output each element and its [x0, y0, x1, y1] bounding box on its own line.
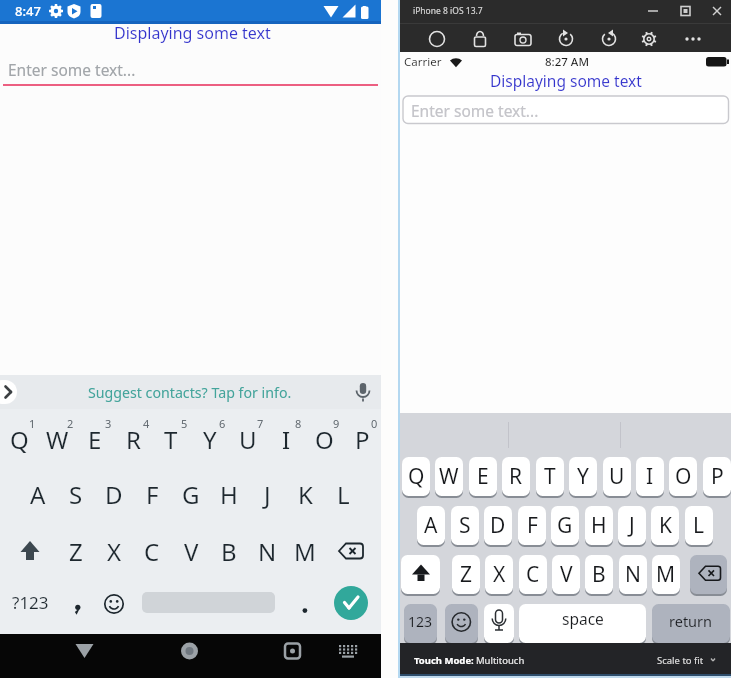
button[interactable]: E — [76, 411, 114, 467]
button[interactable]: Z — [57, 523, 95, 579]
staticText: X — [493, 560, 506, 589]
button[interactable] — [172, 640, 208, 670]
button[interactable]: O — [669, 457, 697, 496]
button[interactable]: G — [172, 466, 210, 522]
button[interactable] — [597, 27, 621, 51]
staticText: 4 — [143, 416, 150, 431]
button[interactable]: Y — [191, 411, 229, 467]
staticText: H — [591, 511, 607, 540]
staticText: Enter some text... — [411, 100, 539, 121]
button[interactable]: F — [518, 506, 546, 545]
button[interactable]: T — [536, 457, 564, 496]
button[interactable]: B — [210, 523, 248, 579]
button[interactable]: Suggest contacts? Tap for info. — [40, 367, 340, 417]
button[interactable]: W — [38, 411, 76, 467]
staticText: X — [107, 535, 122, 568]
button[interactable]: P — [703, 457, 731, 496]
button[interactable]: S — [57, 466, 95, 522]
button[interactable]: Y — [569, 457, 597, 496]
button[interactable] — [275, 640, 311, 670]
button[interactable] — [425, 27, 449, 51]
button[interactable]: T — [152, 411, 190, 467]
button[interactable]: A — [19, 466, 57, 522]
button[interactable] — [292, 592, 318, 626]
button[interactable]: Z — [452, 555, 480, 594]
button[interactable]: V — [172, 523, 210, 579]
staticText: P — [711, 462, 724, 491]
button[interactable]: space — [519, 604, 646, 643]
button[interactable]: V — [552, 555, 580, 594]
button[interactable] — [0, 380, 17, 404]
button[interactable]: W — [435, 457, 463, 496]
button[interactable]: Enter some text... — [8, 44, 308, 94]
staticText: Z — [460, 560, 473, 589]
button[interactable]: Q — [0, 411, 38, 467]
button[interactable] — [334, 586, 368, 620]
button[interactable]: U — [229, 411, 267, 467]
staticText: C — [526, 560, 540, 589]
button[interactable] — [348, 378, 378, 406]
button[interactable] — [681, 27, 705, 51]
button[interactable] — [97, 587, 131, 621]
staticText: I — [282, 423, 291, 456]
staticText: 6 — [219, 416, 226, 431]
button[interactable]: A — [417, 506, 445, 545]
button[interactable]: M — [286, 523, 324, 579]
button[interactable]: M — [652, 555, 680, 594]
staticText: 5 — [181, 416, 188, 431]
staticText: M — [656, 560, 676, 589]
button[interactable]: Q — [402, 457, 430, 496]
button[interactable]: 123 — [404, 604, 437, 643]
button[interactable] — [511, 27, 535, 51]
button[interactable]: R — [114, 411, 152, 467]
button[interactable] — [401, 555, 440, 594]
button[interactable]: S — [451, 506, 479, 545]
button[interactable]: L — [685, 506, 713, 545]
button[interactable]: I — [267, 411, 305, 467]
button[interactable] — [403, 96, 729, 124]
button[interactable] — [331, 640, 365, 670]
button[interactable]: G — [551, 506, 579, 545]
button[interactable]: ?123 — [0, 577, 60, 627]
button[interactable]: I — [636, 457, 664, 496]
button[interactable]: D — [484, 506, 512, 545]
button[interactable]: Scale to fit — [630, 635, 730, 678]
button[interactable] — [468, 27, 492, 51]
button[interactable] — [690, 555, 727, 594]
button[interactable] — [484, 604, 514, 643]
button[interactable]: J — [618, 506, 646, 545]
button[interactable]: return — [652, 604, 730, 643]
button[interactable]: N — [619, 555, 647, 594]
button[interactable]: K — [651, 506, 679, 545]
button[interactable]: D — [95, 466, 133, 522]
staticText: O — [315, 423, 334, 456]
button[interactable] — [66, 640, 102, 670]
staticText: B — [221, 535, 237, 568]
button[interactable] — [6, 525, 54, 577]
button[interactable]: K — [286, 466, 324, 522]
button[interactable] — [554, 27, 578, 51]
button[interactable]: O — [305, 411, 343, 467]
button[interactable]: X — [95, 523, 133, 579]
button[interactable]: R — [502, 457, 530, 496]
button[interactable]: C — [133, 523, 171, 579]
button[interactable]: X — [485, 555, 513, 594]
button[interactable]: P — [343, 411, 381, 467]
button[interactable]: N — [248, 523, 286, 579]
button[interactable] — [445, 604, 478, 643]
staticText: 0 — [371, 416, 378, 431]
button[interactable] — [637, 27, 661, 51]
staticText: H — [220, 478, 238, 511]
button[interactable]: C — [519, 555, 547, 594]
button[interactable] — [64, 592, 90, 626]
button[interactable] — [327, 525, 375, 577]
button[interactable]: H — [585, 506, 613, 545]
button[interactable]: U — [603, 457, 631, 496]
button[interactable]: H — [210, 466, 248, 522]
button[interactable]: F — [133, 466, 171, 522]
button[interactable]: J — [248, 466, 286, 522]
button[interactable]: L — [324, 466, 362, 522]
button[interactable]: B — [585, 555, 613, 594]
button[interactable]: E — [469, 457, 497, 496]
